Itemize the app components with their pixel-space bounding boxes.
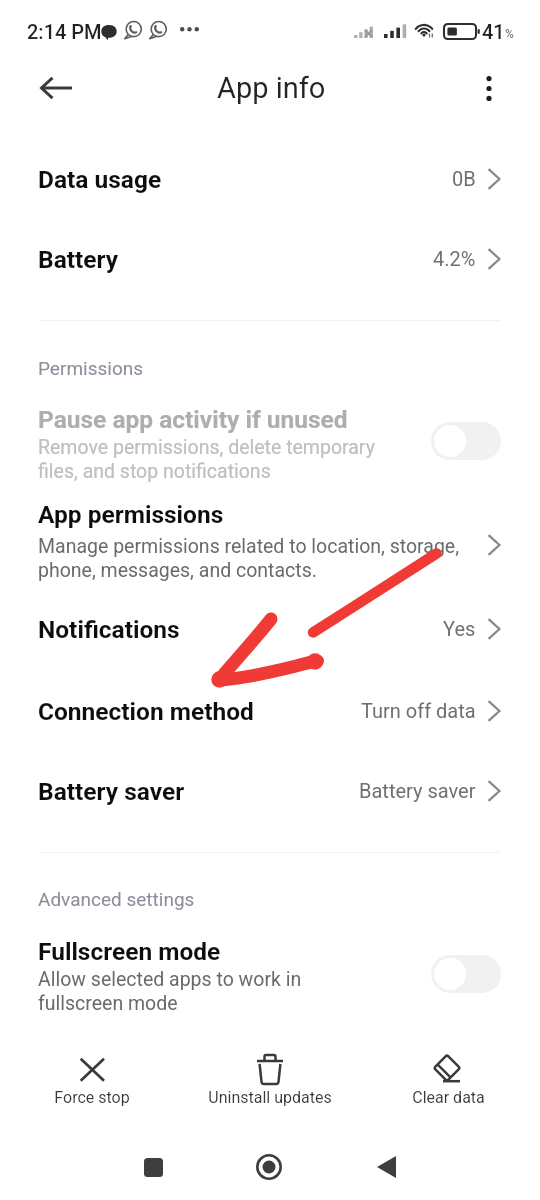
button[interactable] <box>0 392 540 492</box>
staticText: Battery <box>38 245 119 274</box>
staticText: Clear data <box>412 1088 485 1107</box>
staticText: Connection method <box>38 697 254 726</box>
staticText: Permissions <box>38 357 144 379</box>
staticText: Uninstall updates <box>208 1088 332 1107</box>
staticText: Allow selected apps to work in <box>38 968 302 991</box>
staticText: Pause app activity if unused <box>38 405 348 434</box>
staticText: fullscreen mode <box>38 992 178 1015</box>
staticText: Force stop <box>54 1088 130 1107</box>
button[interactable]: Back <box>358 1139 414 1195</box>
staticText: Turn off data <box>361 699 476 722</box>
button[interactable] <box>0 924 540 1024</box>
button[interactable] <box>0 756 540 812</box>
staticText: App info <box>217 71 326 105</box>
staticText: 4.2% <box>433 247 476 270</box>
staticText: 2:14 PM <box>27 20 102 43</box>
button[interactable]: Uninstall updates <box>181 1038 359 1118</box>
button[interactable]: Clear data <box>359 1038 537 1118</box>
button[interactable]: Pause app activity if unused <box>431 422 501 460</box>
button[interactable]: Fullscreen mode <box>431 955 501 993</box>
button[interactable] <box>0 676 540 732</box>
staticText: Yes <box>443 617 476 640</box>
staticText: Advanced settings <box>38 888 195 910</box>
staticText: Data usage <box>38 165 162 194</box>
staticText: Manage permissions related to location, … <box>38 535 460 558</box>
staticText: files, and stop notifications <box>38 460 271 483</box>
button[interactable] <box>0 222 540 278</box>
button[interactable] <box>0 492 540 590</box>
button[interactable] <box>0 142 540 198</box>
staticText: Remove permissions, delete temporary <box>38 436 375 459</box>
staticText: phone, messages, and contacts. <box>38 559 317 582</box>
staticText: Battery saver <box>38 777 185 806</box>
staticText: Notifications <box>38 615 180 644</box>
button[interactable]: Back <box>31 63 81 113</box>
button[interactable]: Force stop <box>3 1038 181 1118</box>
button[interactable] <box>0 594 540 650</box>
button[interactable]: Home <box>241 1139 297 1195</box>
button[interactable]: More options <box>467 66 511 110</box>
staticText: % <box>505 27 514 41</box>
staticText: App permissions <box>38 500 224 529</box>
button[interactable]: Recent apps <box>125 1139 181 1195</box>
staticText: Fullscreen mode <box>38 937 221 966</box>
staticText: Battery saver <box>359 779 476 802</box>
staticText: 41 <box>482 20 505 43</box>
staticText: 0B <box>452 167 476 190</box>
